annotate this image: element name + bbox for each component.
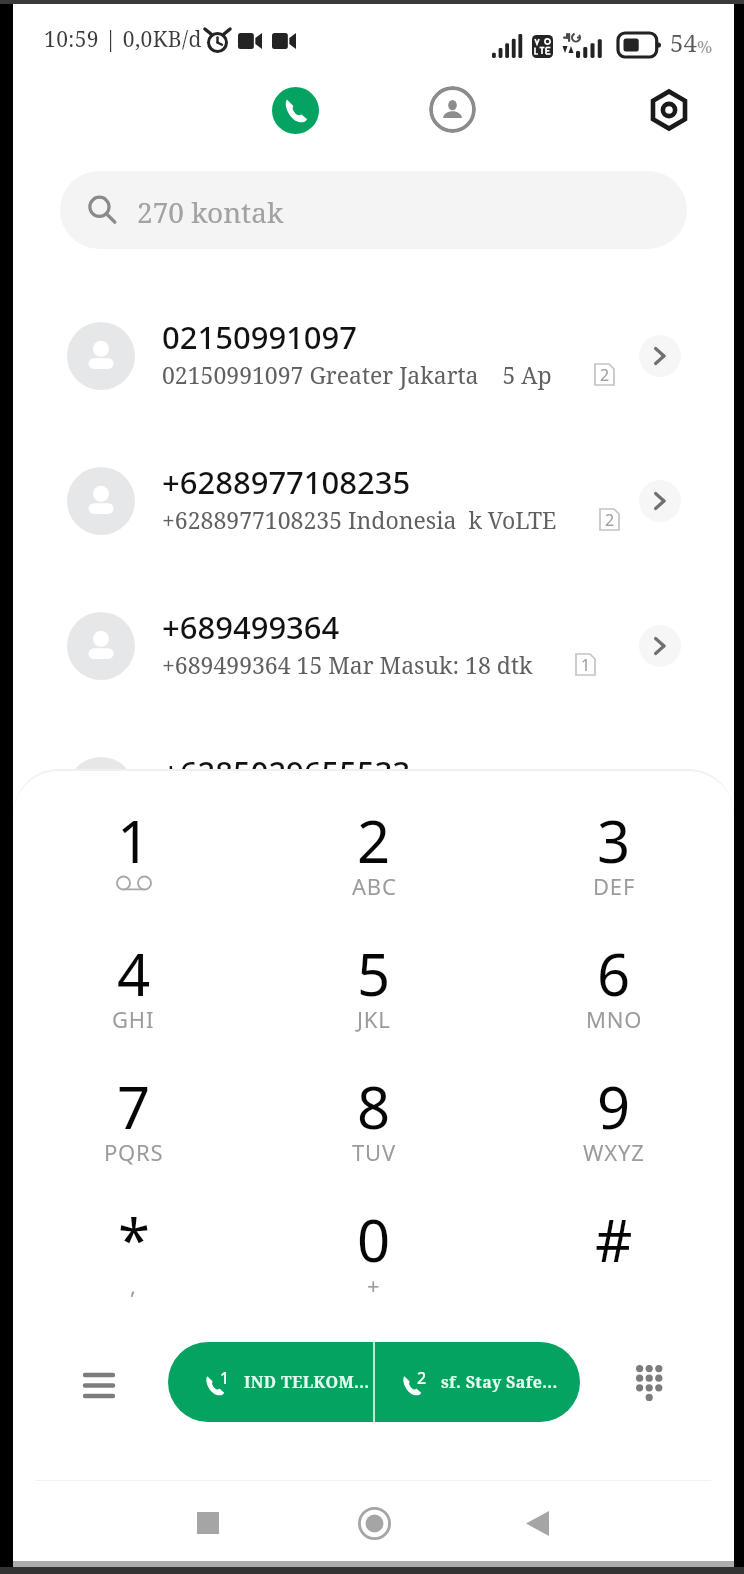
staticText: 0 xyxy=(357,1200,391,1279)
staticText: 54 xyxy=(670,26,697,59)
staticText: sf. Stay Safe... xyxy=(441,1371,558,1393)
staticText: 10:59 | 0,0KB/d xyxy=(44,25,202,54)
button[interactable]: 7 xyxy=(13,1076,254,1209)
button[interactable]: * xyxy=(13,1209,254,1342)
button[interactable]: # xyxy=(494,1209,734,1342)
staticText: * xyxy=(118,1200,150,1279)
button[interactable]: +689499364 xyxy=(13,573,734,718)
button[interactable]: Call details xyxy=(639,480,681,522)
staticText: + xyxy=(367,1270,381,1300)
staticText: 1 xyxy=(220,1367,230,1389)
staticText: 9 xyxy=(597,1067,631,1146)
button[interactable]: Contacts xyxy=(429,86,476,133)
staticText: 02150991097 Greater Jakarta 5 Ap xyxy=(162,359,552,390)
staticText: JKL xyxy=(357,1004,391,1034)
staticText: +6285029655533 xyxy=(162,751,411,793)
staticText: 2 xyxy=(605,509,615,531)
button[interactable]: 1 xyxy=(13,810,254,943)
staticText: DEF xyxy=(593,871,636,901)
button[interactable]: Home xyxy=(350,1499,398,1547)
staticText: , xyxy=(130,1270,137,1300)
button[interactable]: 9 xyxy=(494,1076,734,1209)
staticText: 270 kontak xyxy=(137,193,284,231)
staticText: 8 xyxy=(357,1067,391,1146)
staticText: 3 xyxy=(597,801,631,880)
staticText: ABC xyxy=(352,871,397,901)
button[interactable]: +6285029655533 xyxy=(13,718,734,863)
button[interactable]: 5 xyxy=(254,943,494,1076)
staticText: MNO xyxy=(586,1004,643,1034)
button[interactable]: Recents xyxy=(184,1499,232,1547)
button[interactable]: Call details xyxy=(639,625,681,667)
button[interactable]: 2 xyxy=(254,810,494,943)
staticText: 6 xyxy=(597,934,631,1013)
staticText: 2 xyxy=(417,1367,427,1389)
staticText: +689499364 15 Mar Masuk: 18 dtk xyxy=(162,649,533,680)
button[interactable]: 4 xyxy=(13,943,254,1076)
button[interactable]: 270 kontak xyxy=(60,171,687,249)
staticText: +6288977108235 Indonesia k VoLTE xyxy=(162,504,557,535)
staticText: 2 xyxy=(357,801,391,880)
button[interactable]: Back xyxy=(513,1499,561,1547)
staticText: 02150991097 xyxy=(162,316,358,358)
button[interactable]: Menu xyxy=(75,1362,123,1410)
staticText: 1 xyxy=(581,654,591,676)
staticText: PQRS xyxy=(104,1137,164,1167)
staticText: 4 xyxy=(117,934,151,1013)
button[interactable]: 1 xyxy=(168,1342,373,1422)
button[interactable]: 2 xyxy=(375,1342,580,1422)
staticText: # xyxy=(595,1200,633,1279)
button[interactable]: 0 xyxy=(254,1209,494,1342)
staticText: 7 xyxy=(117,1067,151,1146)
staticText: % xyxy=(697,35,713,58)
button[interactable]: Call details xyxy=(639,335,681,377)
staticText: TUV xyxy=(352,1137,396,1167)
staticText: IND TELKOM... xyxy=(244,1371,370,1393)
staticText: 1 xyxy=(117,801,151,880)
button[interactable]: 3 xyxy=(494,810,734,943)
button[interactable]: 8 xyxy=(254,1076,494,1209)
button[interactable]: Keypad xyxy=(625,1362,673,1410)
staticText: +6288977108235 xyxy=(162,461,411,503)
button[interactable]: Settings xyxy=(647,88,691,132)
staticText: 2 xyxy=(600,364,610,386)
button[interactable]: +6288977108235 xyxy=(13,428,734,573)
staticText: +689499364 xyxy=(162,606,340,648)
staticText: 5 xyxy=(357,934,391,1013)
staticText: +6285029655533 Indonesia 15 Mar xyxy=(162,794,546,825)
button[interactable]: 6 xyxy=(494,943,734,1076)
button[interactable]: 02150991097 xyxy=(13,283,734,428)
staticText: WXYZ xyxy=(583,1137,645,1167)
staticText: GHI xyxy=(112,1004,155,1034)
button[interactable]: Dialer xyxy=(272,87,319,134)
